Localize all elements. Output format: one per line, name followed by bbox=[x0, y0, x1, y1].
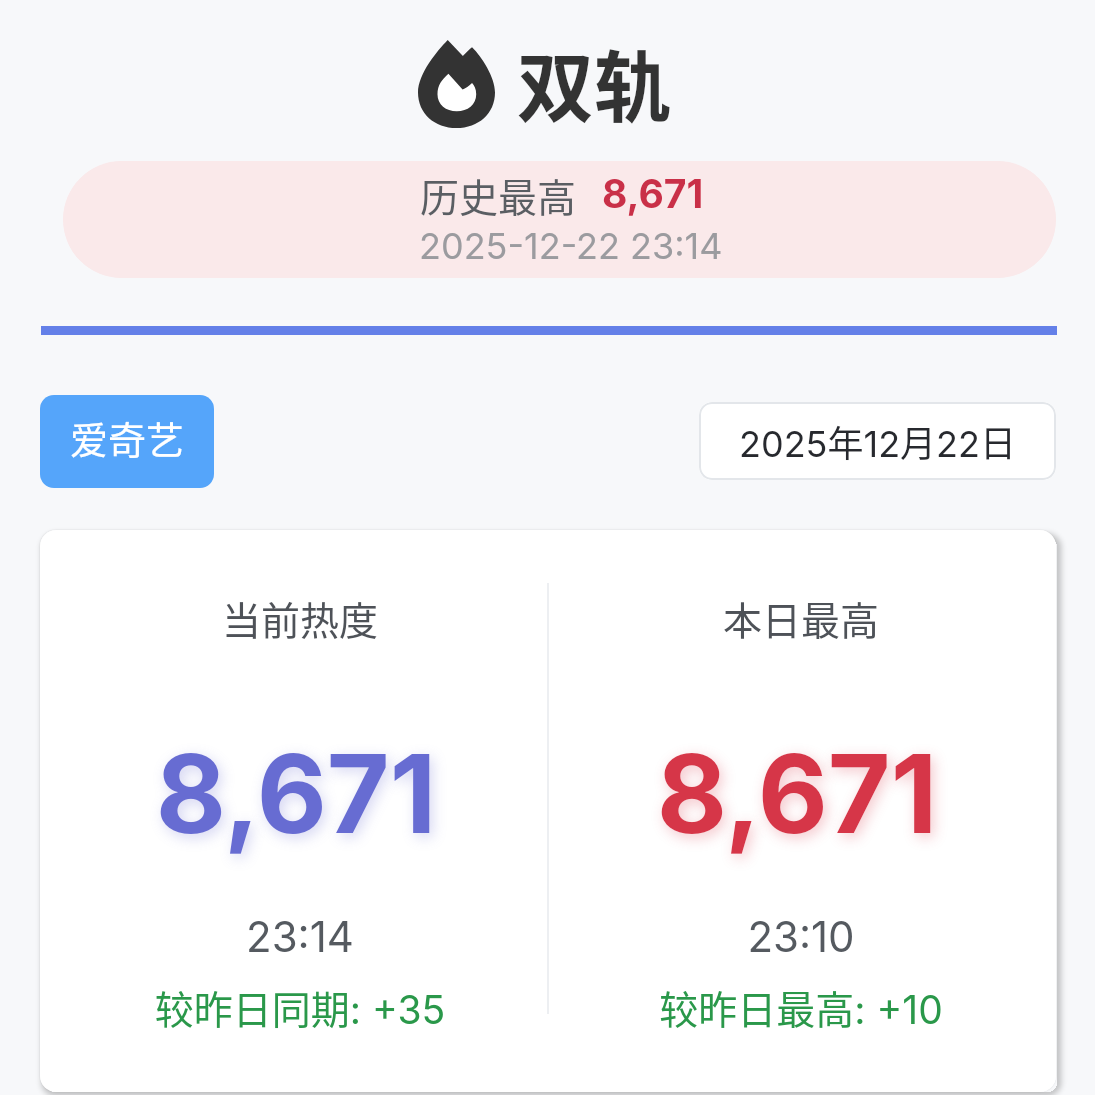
button[interactable] bbox=[40, 530, 1056, 1092]
staticText: 8,671 bbox=[602, 170, 704, 217]
staticText: 爱奇艺 bbox=[70, 410, 185, 465]
button[interactable]: 爱奇艺 bbox=[40, 395, 214, 488]
button[interactable]: 2025年12月22日 bbox=[699, 402, 1056, 480]
staticText: 23:14 bbox=[0, 911, 600, 962]
staticText: 2025年12月22日 bbox=[739, 415, 1017, 467]
staticText: 8,671 bbox=[497, 728, 1095, 859]
staticText: 历史最高 bbox=[420, 167, 577, 223]
other: 双轨 logo bbox=[418, 39, 495, 128]
staticText: 2025-12-22 23:14 bbox=[419, 224, 723, 268]
button[interactable] bbox=[63, 161, 1056, 278]
staticText: 23:10 bbox=[501, 911, 1095, 962]
staticText: 8,671 bbox=[0, 728, 596, 859]
staticText: 当前热度 bbox=[0, 590, 600, 646]
staticText: 较昨日同期: +35 bbox=[0, 979, 600, 1035]
staticText: 双轨 bbox=[517, 27, 671, 138]
staticText: 较昨日最高: +10 bbox=[501, 979, 1095, 1035]
staticText: 本日最高 bbox=[501, 590, 1095, 646]
